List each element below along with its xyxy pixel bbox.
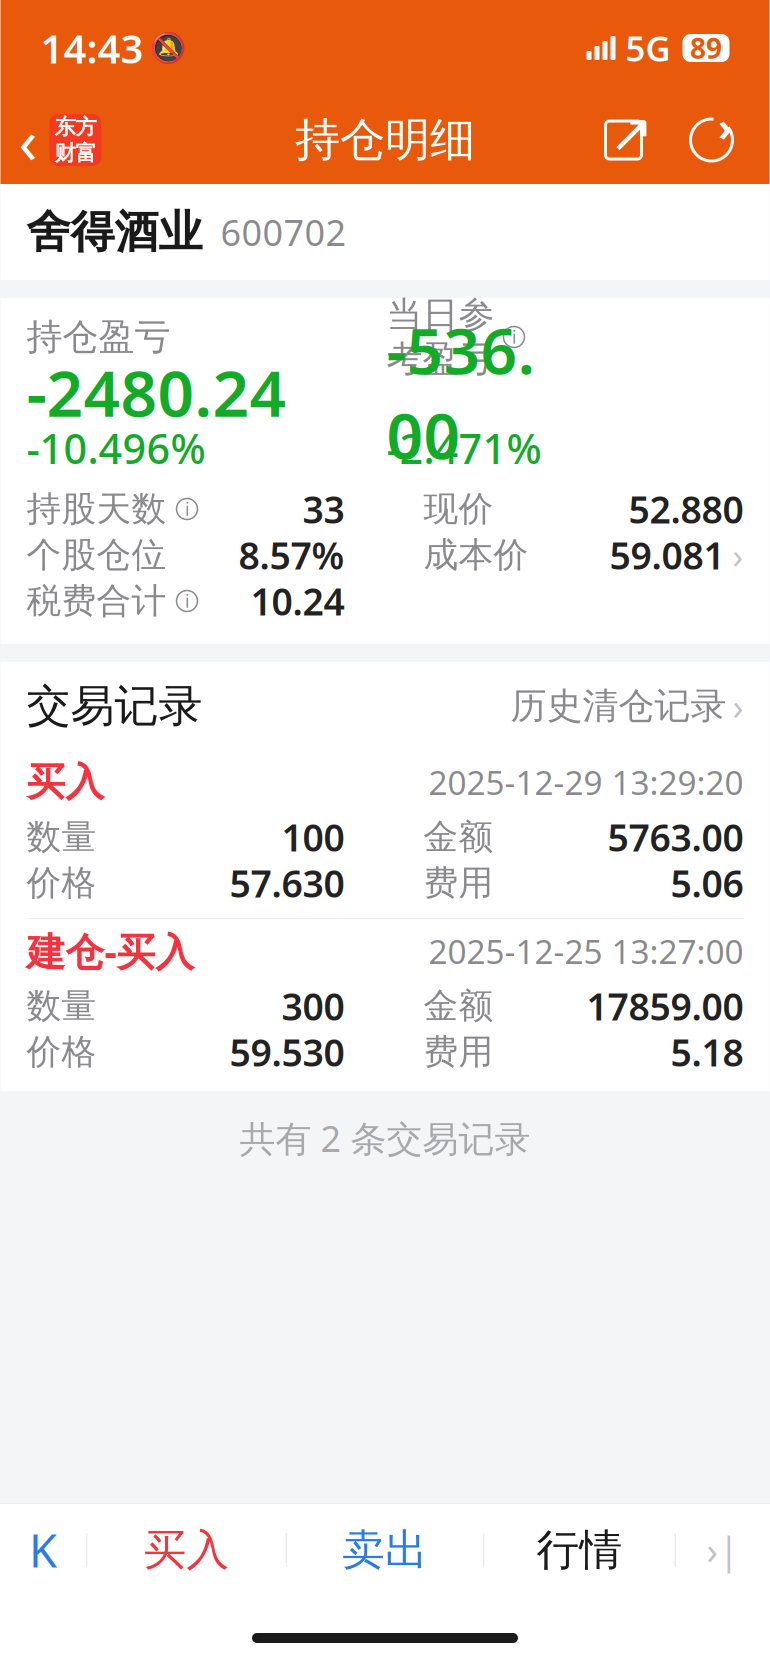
staticText: 交易记录 [26,679,202,733]
button[interactable]: 分享 [597,114,649,166]
staticText: 59.081 [609,530,724,580]
staticText: 52.880 [628,484,743,534]
staticText: 89 [690,29,722,67]
staticText: 现价 [423,488,493,530]
staticText: 东方 [54,114,96,140]
staticText: -2480.24 [26,349,286,434]
staticText: -536.00 [386,307,535,477]
staticText: 8.57% [238,530,344,580]
staticText: i [512,325,516,348]
staticText: 5.06 [670,858,743,908]
staticText: i [185,589,189,612]
staticText: 数量 [26,816,96,858]
staticText: 600702 [220,208,346,256]
staticText: 33 [302,484,344,534]
staticText: ↗ [609,103,654,163]
staticText: 共有 2 条交易记录 [239,1114,530,1162]
staticText: -10.496% [26,421,205,475]
staticText: 17859.00 [586,981,743,1031]
staticText: 价格 [26,862,96,904]
staticText: 300 [281,981,344,1031]
staticText: 57.630 [229,858,344,908]
staticText: 舍得酒业 [26,205,202,259]
staticText: › [732,532,743,578]
staticText: 金额 [423,985,493,1027]
staticText: 🔕 [150,31,187,65]
button[interactable]: 行情 [484,1504,674,1596]
button[interactable]: 刷新 [685,114,737,166]
staticText: 财富 [54,140,96,166]
staticText: 数量 [26,985,96,1027]
staticText: 买入 [26,758,104,806]
staticText: 持股天数 [26,488,166,530]
staticText: 59.530 [229,1027,344,1077]
staticText: 历史清仓记录 [510,684,726,728]
staticText: 卖出 [342,1524,428,1576]
button[interactable]: 成本价 [423,532,743,578]
button[interactable]: 下一个 [676,1504,770,1596]
staticText: 2025-12-29 13:29:20 [428,760,743,804]
button[interactable]: 买入 [87,1504,285,1596]
staticText: 10.24 [250,576,344,626]
staticText: 14:43 [40,21,143,74]
staticText: 费用 [423,1031,493,1073]
staticText: 持仓盈亏 [26,315,170,359]
staticText: › [718,99,733,152]
staticText: 金额 [423,816,493,858]
staticText: 费用 [423,862,493,904]
staticText: 买入 [143,1524,229,1576]
staticText: 当日参考盈亏 [386,293,494,381]
staticText: 2025-12-25 13:27:00 [428,929,743,973]
button[interactable]: 卖出 [287,1504,483,1596]
staticText: i [185,497,189,520]
staticText: 建仓-买入 [26,925,194,977]
staticText: 100 [281,812,344,862]
staticText: 5763.00 [607,812,743,862]
staticText: 行情 [536,1524,622,1576]
button[interactable]: 返回 [0,102,119,178]
staticText: 税费合计 [26,580,166,622]
staticText: 成本价 [423,534,528,576]
staticText: 5.18 [670,1027,743,1077]
staticText: › [732,682,743,730]
button[interactable]: K线 [0,1504,86,1596]
staticText: ‹ [18,99,37,181]
staticText: ›| [706,1525,739,1575]
button[interactable]: 历史清仓记录 [510,682,743,730]
staticText: 5G [625,25,670,71]
staticText: K [29,1520,57,1580]
staticText: 价格 [26,1031,96,1073]
staticText: 个股仓位 [26,534,166,576]
staticText: -2.471% [386,421,541,475]
staticText: 持仓明细 [295,112,475,168]
